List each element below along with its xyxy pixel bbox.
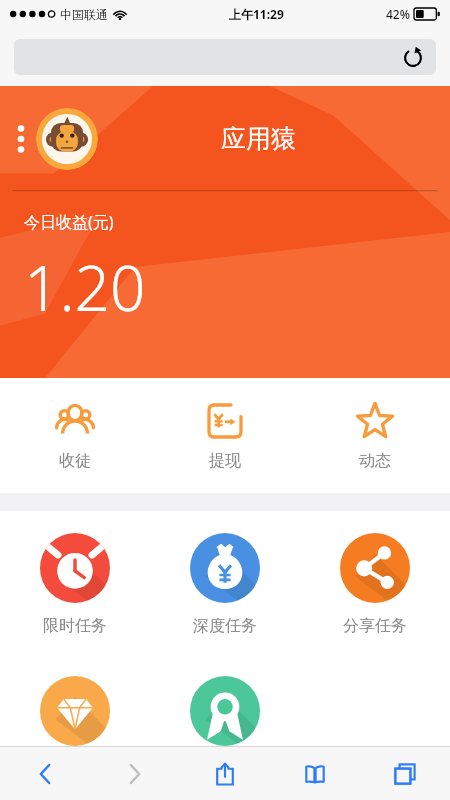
button[interactable]: Back	[0, 747, 90, 800]
staticText: 限时任务	[43, 616, 107, 636]
button[interactable]: 分享任务	[300, 511, 450, 636]
button[interactable]: 限时任务	[0, 511, 150, 636]
staticText: 动态	[359, 451, 391, 471]
button[interactable]: 提现	[150, 378, 300, 493]
staticText: 收徒	[59, 451, 91, 471]
button[interactable]	[0, 654, 150, 746]
button[interactable]: 深度任务	[150, 511, 300, 636]
staticText: 上午11:29	[229, 6, 284, 22]
button[interactable]: 动态	[300, 378, 450, 493]
button[interactable]: Menu	[10, 117, 32, 161]
staticText: 提现	[209, 451, 241, 471]
button[interactable]: Reload	[402, 46, 424, 68]
button[interactable]: Forward	[90, 747, 180, 800]
staticText: 1.20	[24, 245, 146, 329]
button[interactable]: Tabs	[360, 747, 450, 800]
button[interactable]: 收徒	[0, 378, 150, 493]
button[interactable]: Share	[180, 747, 270, 800]
button[interactable]: Profile	[36, 108, 98, 170]
staticText: 42%	[386, 6, 410, 22]
button[interactable]	[150, 654, 300, 746]
staticText: 应用猿	[221, 123, 296, 154]
button[interactable]: Reload	[14, 39, 436, 75]
button[interactable]: Bookmarks	[270, 747, 360, 800]
staticText: 分享任务	[343, 616, 407, 636]
staticText: 中国联通	[60, 7, 108, 22]
staticText: 深度任务	[193, 616, 257, 636]
staticText: 今日收益(元)	[24, 211, 114, 233]
